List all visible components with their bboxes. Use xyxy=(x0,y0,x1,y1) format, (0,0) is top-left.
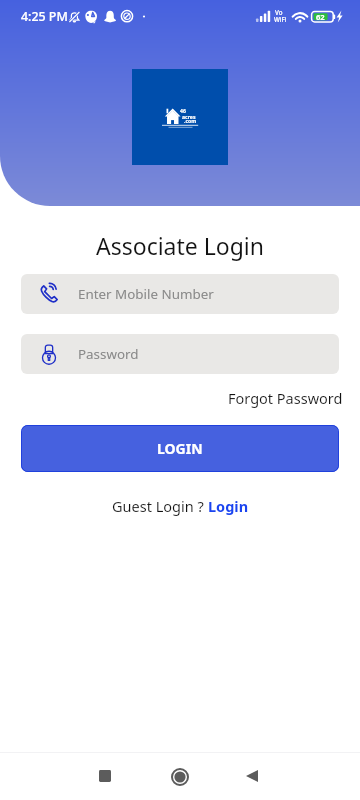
staticText: 4:25 PM xyxy=(21,8,68,25)
staticText: Login xyxy=(208,496,249,516)
staticText: Enter Mobile Number xyxy=(78,285,214,303)
staticText: 62 xyxy=(316,12,325,22)
staticText: LOGIN xyxy=(157,439,203,458)
button[interactable]: Home xyxy=(168,765,192,789)
button[interactable]: Forgot Password xyxy=(228,388,343,408)
button[interactable]: Recent apps xyxy=(93,764,117,788)
button[interactable]: Login xyxy=(208,496,249,516)
staticText: Forgot Password xyxy=(228,388,343,408)
staticText: 46 xyxy=(180,108,186,115)
staticText: .com xyxy=(184,118,197,125)
staticText: WiFi xyxy=(274,15,287,23)
button[interactable]: Password xyxy=(21,334,339,374)
staticText: Associate Login xyxy=(0,230,360,261)
button[interactable]: Back xyxy=(240,764,264,788)
button[interactable]: Enter Mobile Number xyxy=(21,274,339,314)
staticText: acres xyxy=(182,114,196,121)
staticText: Guest Login ? xyxy=(112,496,208,516)
button[interactable]: LOGIN xyxy=(21,425,339,472)
staticText: Vo xyxy=(275,8,283,16)
staticText: Password xyxy=(78,345,139,363)
